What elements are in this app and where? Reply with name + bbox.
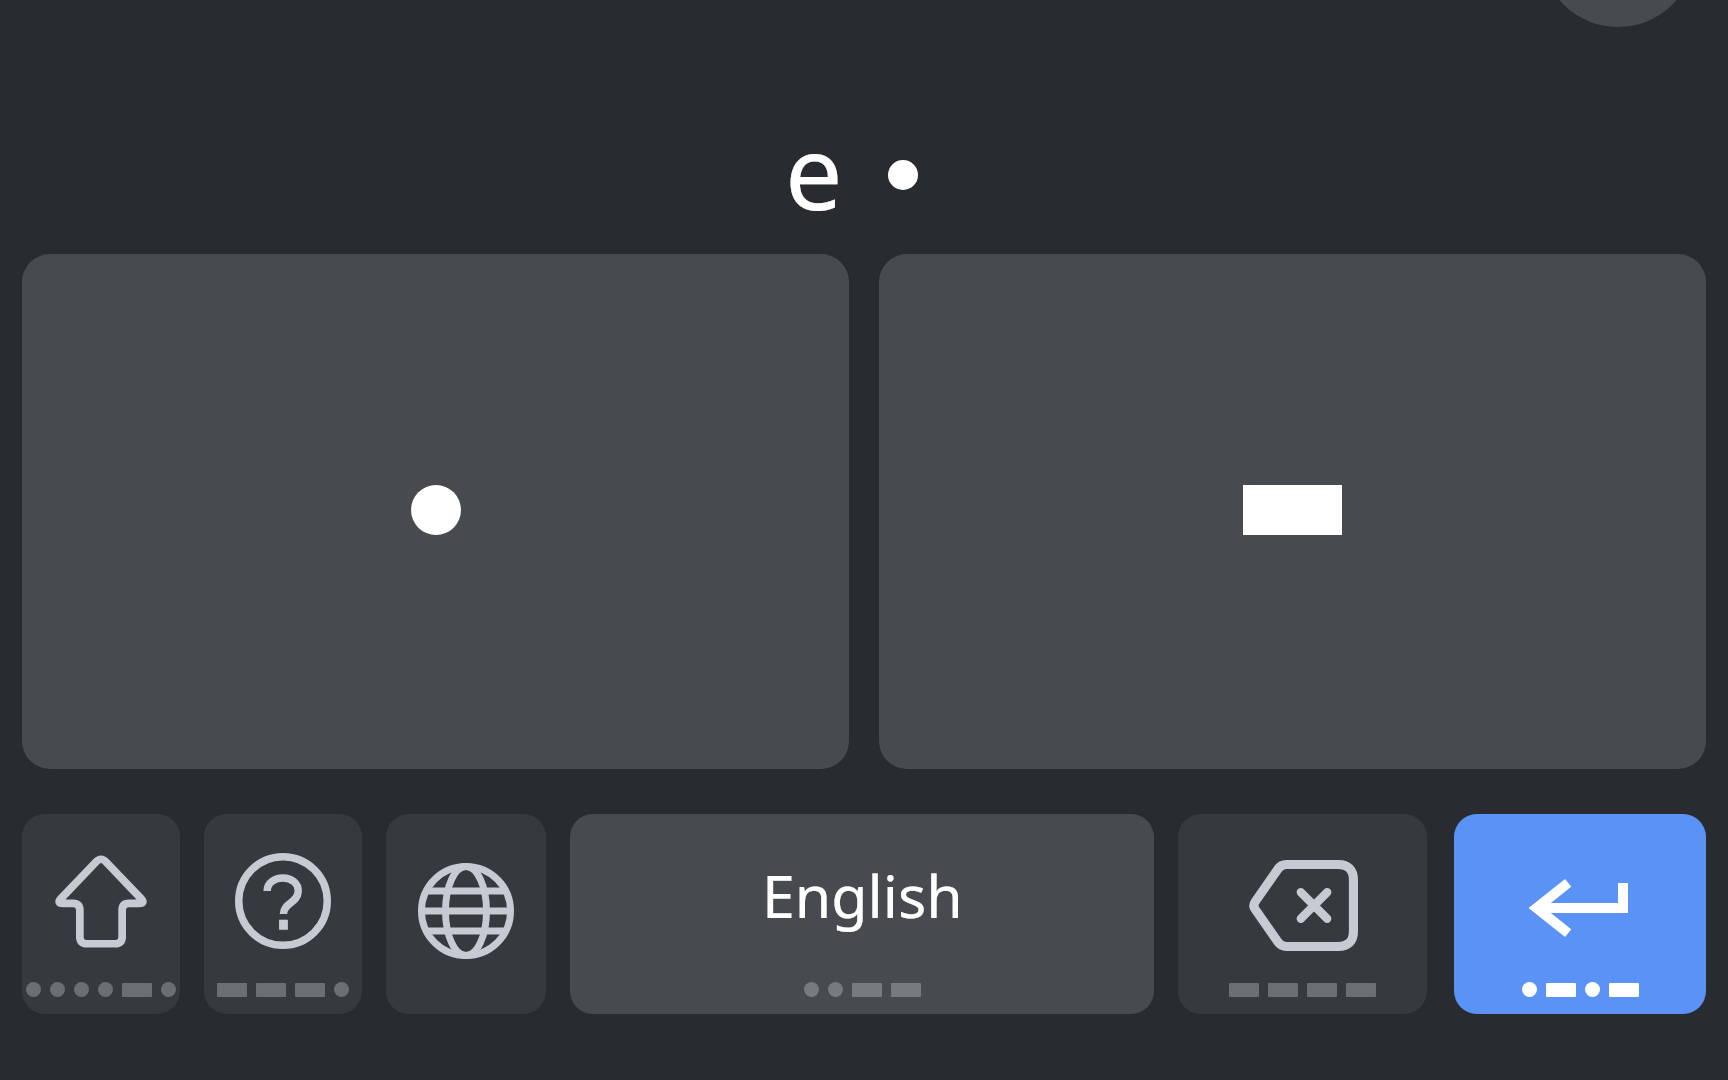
button[interactable]: More options: [1541, 0, 1695, 27]
button[interactable]: Braille dot 4: [879, 254, 1706, 769]
button[interactable]: Braille dot 1: [22, 254, 849, 769]
button[interactable]: English: [570, 814, 1154, 1014]
button[interactable]: Switch language: [386, 814, 546, 1014]
button[interactable]: Shift: [22, 814, 180, 1014]
button[interactable]: Enter: [1454, 814, 1706, 1014]
button[interactable]: Help: [204, 814, 362, 1014]
button[interactable]: Backspace: [1178, 814, 1427, 1014]
staticText: e: [785, 101, 843, 240]
staticText: English: [762, 855, 963, 935]
